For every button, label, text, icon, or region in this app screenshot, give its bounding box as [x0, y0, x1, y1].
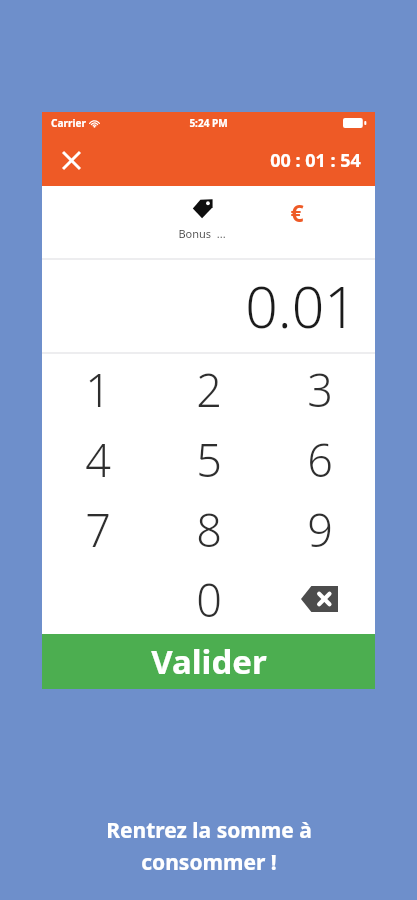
- staticText: 0: [196, 569, 222, 630]
- button[interactable]: 6: [264, 424, 375, 494]
- button[interactable]: 2: [153, 354, 264, 424]
- button[interactable]: 7: [42, 494, 153, 564]
- staticText: 8: [196, 499, 222, 560]
- staticText: 1: [85, 359, 111, 420]
- staticText: Bonus ...: [178, 226, 226, 241]
- staticText: 00 : 01 : 54: [270, 148, 361, 173]
- button[interactable]: 0: [153, 564, 264, 634]
- button[interactable]: Backspace: [264, 564, 375, 634]
- staticText: consommer !: [141, 848, 277, 877]
- staticText: €: [290, 197, 304, 228]
- button[interactable]: Valider: [42, 634, 375, 689]
- staticText: 9: [307, 499, 333, 560]
- button[interactable]: Close: [50, 139, 92, 181]
- staticText: 5:24 PM: [189, 116, 228, 130]
- staticText: 0.01: [245, 267, 357, 345]
- staticText: Carrier: [51, 116, 86, 130]
- button[interactable]: 1: [42, 354, 153, 424]
- button[interactable]: 4: [42, 424, 153, 494]
- button[interactable]: 5: [153, 424, 264, 494]
- button[interactable]: 3: [264, 354, 375, 424]
- staticText: Valider: [151, 639, 267, 684]
- staticText: 2: [196, 359, 222, 420]
- staticText: 4: [85, 429, 111, 490]
- staticText: Rentrez la somme à: [106, 816, 312, 845]
- staticText: 6: [307, 429, 333, 490]
- staticText: 7: [85, 499, 111, 560]
- button[interactable]: Euro: [270, 194, 324, 230]
- staticText: 5: [196, 429, 222, 490]
- button[interactable]: 9: [264, 494, 375, 564]
- staticText: 3: [307, 359, 333, 420]
- button[interactable]: 8: [153, 494, 264, 564]
- button[interactable]: Bonus ...: [160, 198, 244, 241]
